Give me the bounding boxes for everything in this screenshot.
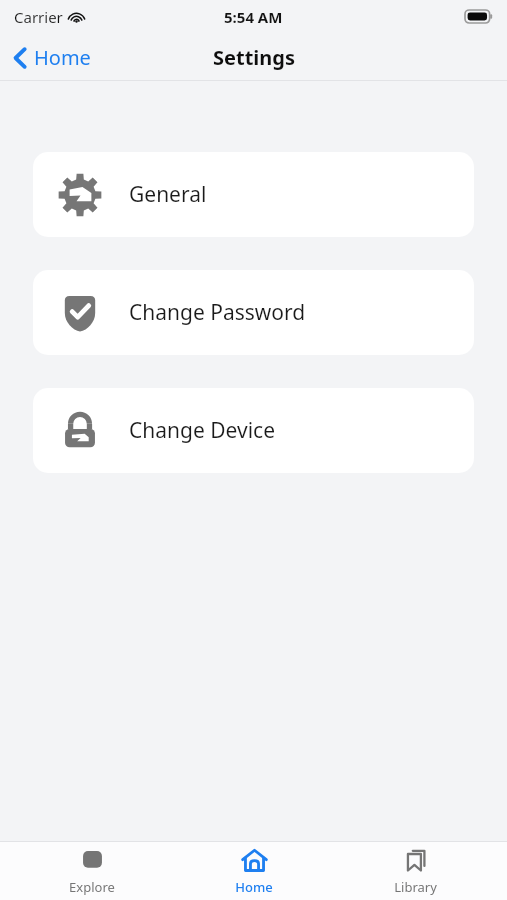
staticText: Home xyxy=(235,878,273,896)
staticText: Change Password xyxy=(129,298,306,327)
other: Explore xyxy=(79,847,106,874)
staticText: Settings xyxy=(213,44,295,71)
button[interactable]: Home xyxy=(184,843,324,900)
staticText: Explore xyxy=(69,878,115,896)
button[interactable]: Explore xyxy=(22,843,162,900)
staticText: Home xyxy=(34,44,91,71)
other: Library xyxy=(402,847,429,874)
staticText: General xyxy=(129,180,207,209)
staticText: Carrier xyxy=(14,7,63,27)
button[interactable]: General xyxy=(33,152,474,237)
staticText: Change Device xyxy=(129,416,275,445)
staticText: Library xyxy=(394,878,437,896)
button[interactable]: Library xyxy=(345,843,485,900)
button[interactable]: Change Password xyxy=(33,270,474,355)
other: Home xyxy=(241,847,268,874)
staticText: 5:54 AM xyxy=(224,7,283,27)
button[interactable]: Change Device xyxy=(33,388,474,473)
button[interactable]: Home xyxy=(0,38,101,77)
